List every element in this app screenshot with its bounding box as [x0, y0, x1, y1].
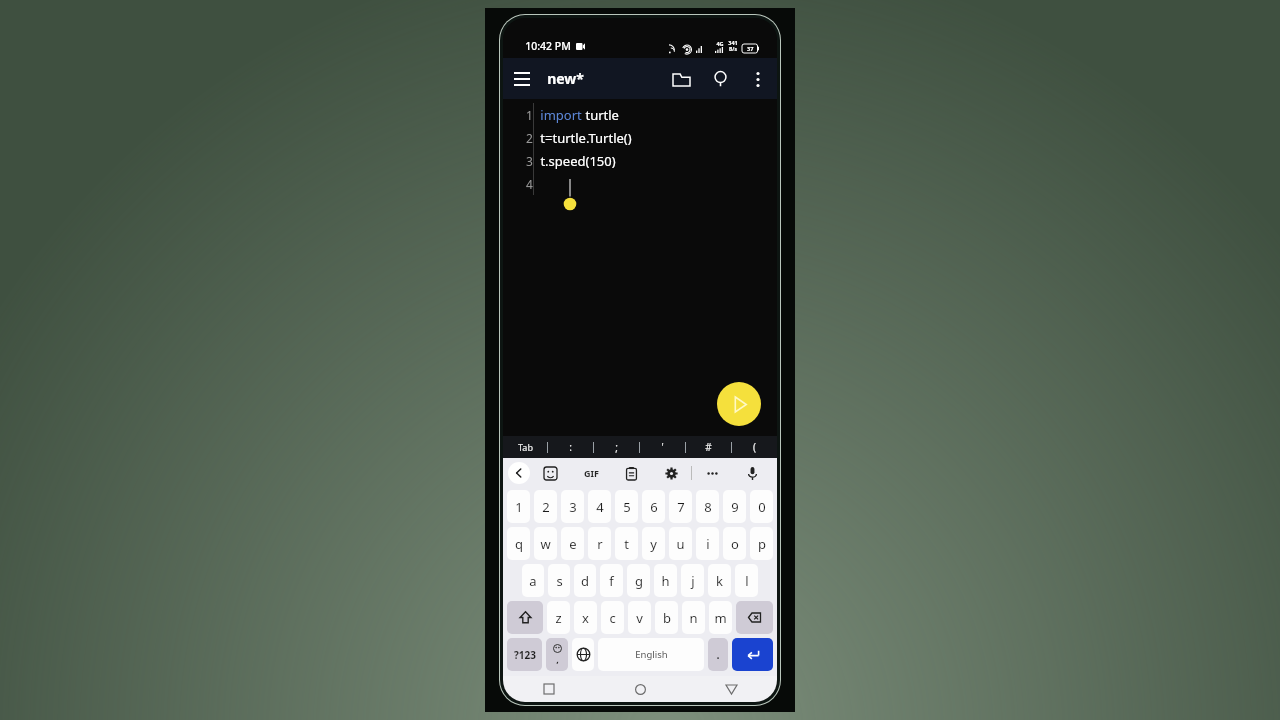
staticText: q: [515, 535, 523, 553]
button[interactable]: Menu: [503, 60, 541, 98]
button[interactable]: More: [692, 458, 732, 488]
button[interactable]: Open folder: [661, 59, 701, 99]
button[interactable]: Clipboard: [611, 458, 651, 488]
button[interactable]: r: [588, 527, 611, 560]
staticText: t=turtle.Turtle(): [540, 129, 632, 147]
button[interactable]: q: [507, 527, 530, 560]
button[interactable]: Back: [686, 676, 777, 702]
button[interactable]: Enter: [732, 638, 773, 671]
button[interactable]: 3: [561, 490, 584, 523]
button[interactable]: k: [708, 564, 731, 597]
button[interactable]: 7: [669, 490, 692, 523]
button[interactable]: z: [547, 601, 570, 634]
staticText: j: [691, 572, 695, 590]
button[interactable]: d: [574, 564, 596, 597]
staticText: f: [609, 572, 614, 590]
button[interactable]: 5: [615, 490, 638, 523]
button[interactable]: p: [750, 527, 773, 560]
button[interactable]: 6: [642, 490, 665, 523]
button[interactable]: i: [696, 527, 719, 560]
button[interactable]: GIF: [571, 467, 611, 479]
button[interactable]: u: [669, 527, 692, 560]
staticText: r: [597, 535, 603, 553]
button[interactable]: 2: [534, 490, 557, 523]
button[interactable]: a: [522, 564, 544, 597]
staticText: 10:42 PM: [525, 39, 571, 53]
staticText: 2: [542, 498, 550, 516]
button[interactable]: w: [534, 527, 557, 560]
staticText: 6: [650, 498, 658, 516]
staticText: 1: [526, 107, 533, 123]
button[interactable]: l: [735, 564, 758, 597]
button[interactable]: ?123: [507, 638, 542, 671]
staticText: v: [636, 609, 643, 627]
staticText: o: [731, 535, 739, 553]
button[interactable]: Recents: [503, 676, 595, 702]
button[interactable]: t: [615, 527, 638, 560]
staticText: s: [556, 572, 563, 590]
staticText: 4: [596, 498, 604, 516]
button[interactable]: m: [709, 601, 732, 634]
button[interactable]: Hint: [701, 60, 739, 98]
staticText: m: [714, 609, 727, 627]
button[interactable]: #: [686, 436, 731, 458]
staticText: z: [555, 609, 562, 627]
button[interactable]: Home: [595, 676, 686, 702]
button[interactable]: f: [600, 564, 623, 597]
staticText: t.speed(150): [540, 152, 616, 170]
staticText: 3: [526, 153, 533, 169]
button[interactable]: h: [654, 564, 677, 597]
button[interactable]: :: [548, 436, 593, 458]
button[interactable]: 1: [507, 490, 530, 523]
button[interactable]: e: [561, 527, 584, 560]
button[interactable]: 8: [696, 490, 719, 523]
button[interactable]: ;: [594, 436, 639, 458]
button[interactable]: Emoji: [546, 638, 568, 671]
staticText: k: [716, 572, 723, 590]
button[interactable]: v: [628, 601, 651, 634]
button[interactable]: o: [723, 527, 746, 560]
staticText: .: [716, 647, 720, 662]
button[interactable]: j: [681, 564, 704, 597]
button[interactable]: Run: [717, 382, 761, 426]
button[interactable]: y: [642, 527, 665, 560]
staticText: 1: [515, 498, 523, 516]
button[interactable]: Shift: [507, 601, 543, 634]
button[interactable]: Settings: [651, 458, 691, 488]
staticText: English: [635, 648, 668, 661]
button[interactable]: n: [682, 601, 705, 634]
button[interactable]: s: [548, 564, 570, 597]
button[interactable]: x: [574, 601, 597, 634]
staticText: n: [689, 609, 698, 627]
button[interactable]: (: [732, 436, 777, 458]
staticText: 37: [747, 45, 754, 52]
button[interactable]: 9: [723, 490, 746, 523]
button[interactable]: Voice input: [732, 458, 772, 488]
button[interactable]: b: [655, 601, 678, 634]
staticText: new*: [547, 69, 584, 88]
button[interactable]: 4: [588, 490, 611, 523]
button[interactable]: More options: [739, 60, 777, 98]
staticText: w: [540, 535, 551, 553]
button[interactable]: Sticker: [530, 458, 571, 488]
button[interactable]: Tab: [503, 436, 547, 458]
staticText: u: [676, 535, 685, 553]
staticText: x: [582, 609, 589, 627]
button[interactable]: 0: [750, 490, 773, 523]
button[interactable]: Change language: [572, 638, 594, 671]
staticText: :: [569, 440, 572, 454]
button[interactable]: Backspace: [736, 601, 773, 634]
button[interactable]: ': [640, 436, 685, 458]
button[interactable]: c: [601, 601, 624, 634]
staticText: 8: [704, 498, 712, 516]
button[interactable]: Back: [508, 462, 530, 484]
button[interactable]: g: [627, 564, 650, 597]
staticText: Tab: [518, 441, 533, 453]
staticText: ;: [615, 440, 618, 454]
button[interactable]: .: [708, 638, 728, 671]
button[interactable]: English: [598, 638, 704, 671]
staticText: ': [661, 440, 664, 454]
staticText: a: [529, 572, 537, 590]
staticText: import: [540, 106, 582, 124]
staticText: t: [624, 535, 629, 553]
